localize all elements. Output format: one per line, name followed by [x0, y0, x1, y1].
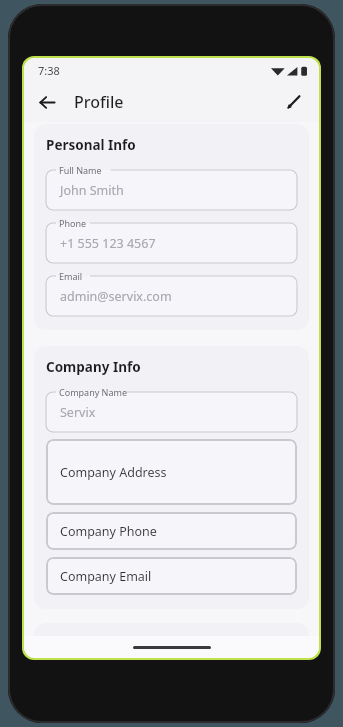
staticText: Company Email [60, 568, 152, 585]
staticText: +1 555 123 4567 [60, 235, 156, 252]
staticText: Profile [74, 91, 124, 113]
staticText: Company Phone [60, 523, 157, 540]
button[interactable]: Company Phone [46, 512, 297, 550]
staticText: Company Address [60, 464, 167, 481]
button[interactable]: Company Name [46, 386, 297, 432]
button[interactable]: Back [28, 83, 66, 121]
button[interactable]: Company Email [46, 557, 297, 595]
staticText: Full Name [59, 164, 102, 176]
staticText: Company Info [46, 358, 141, 376]
staticText: Personal Info [46, 136, 136, 154]
button[interactable]: Company Address [46, 439, 297, 505]
staticText: Company Name [59, 386, 128, 398]
button[interactable]: Email [46, 270, 297, 316]
staticText: 7:38 [38, 63, 60, 78]
button[interactable]: Full Name [46, 164, 297, 210]
button[interactable]: Phone [46, 217, 297, 263]
staticText: admin@servix.com [60, 288, 172, 305]
staticText: Servix [60, 404, 96, 421]
button[interactable]: Edit [275, 83, 313, 121]
staticText: Email [59, 270, 83, 282]
staticText: John Smith [60, 182, 124, 199]
staticText: Phone [59, 217, 87, 229]
